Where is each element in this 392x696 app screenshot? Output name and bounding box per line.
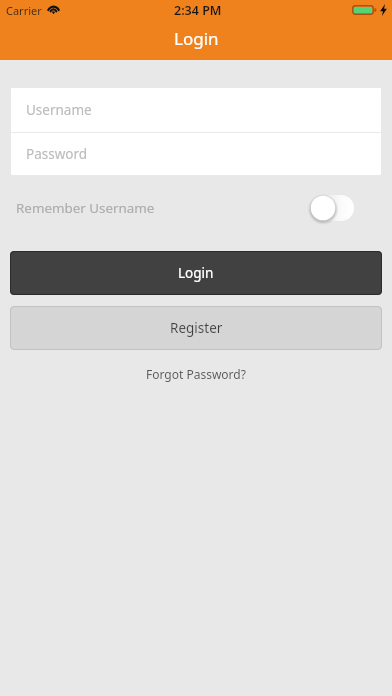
staticText: 2:34 PM [174,2,222,19]
button[interactable]: Login [10,251,382,295]
button[interactable]: Remember Username [310,195,354,221]
button[interactable]: Username [11,88,381,132]
button[interactable]: Register [10,306,382,350]
staticText: Carrier [6,3,42,18]
staticText: Username [26,101,92,119]
staticText: Password [26,145,88,163]
staticText: Login [174,27,219,50]
staticText: Remember Username [16,199,155,217]
staticText: Register [170,319,223,337]
button[interactable]: Password [11,133,381,175]
button[interactable]: Forgot Password? [136,363,256,385]
staticText: Login [178,264,214,282]
